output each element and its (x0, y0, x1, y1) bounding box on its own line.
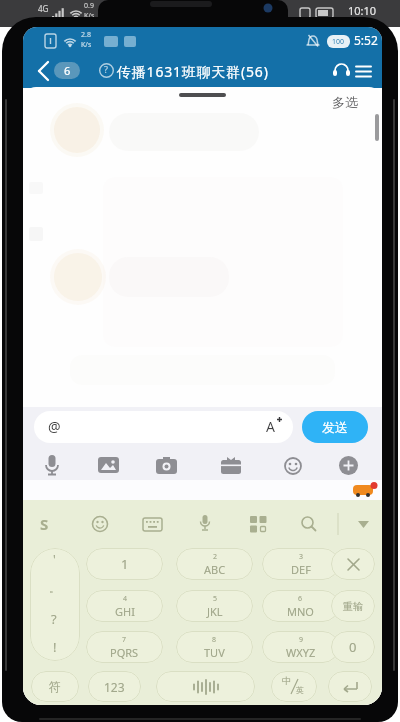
staticText: TUV (204, 645, 225, 660)
staticText: 10:10 (348, 3, 377, 18)
staticText: DEF (291, 562, 311, 577)
button[interactable] (92, 516, 108, 532)
button[interactable]: 4 (86, 590, 163, 622)
staticText: 传播1631班聊天群(56) (117, 62, 269, 81)
staticText: 1 (121, 555, 129, 573)
staticText: 100 (332, 37, 345, 47)
staticText: 中 (282, 675, 291, 686)
button[interactable] (331, 548, 375, 580)
staticText: @ (48, 417, 61, 436)
button[interactable] (156, 671, 255, 702)
staticText: 发送 (322, 419, 348, 435)
button[interactable]: 123 (88, 671, 141, 702)
staticText: 5 (213, 594, 218, 604)
staticText: 123 (104, 679, 125, 695)
button[interactable]: 重输 (331, 590, 375, 622)
button[interactable] (332, 62, 352, 79)
button[interactable] (356, 65, 372, 78)
button[interactable] (34, 411, 293, 443)
button[interactable]: 3 (262, 548, 339, 580)
button[interactable] (30, 548, 80, 661)
staticText: 0.9 (84, 1, 94, 11)
staticText: WXYZ (286, 645, 316, 660)
staticText: JKL (207, 604, 223, 619)
button[interactable]: 9 (262, 631, 339, 663)
button[interactable] (250, 516, 266, 532)
staticText: 9 (299, 635, 304, 645)
staticText: 4G (38, 3, 49, 14)
button[interactable]: 多选 (328, 91, 362, 113)
button[interactable]: 6 (262, 590, 339, 622)
staticText: 2 (213, 552, 218, 562)
staticText: 。 (49, 581, 60, 595)
staticText: 8 (212, 635, 217, 645)
staticText: 3 (299, 552, 304, 562)
button[interactable]: 发送 (302, 411, 368, 443)
button[interactable] (42, 455, 62, 476)
button[interactable]: 8 (176, 631, 253, 663)
button[interactable] (301, 516, 317, 532)
button[interactable] (98, 457, 119, 474)
staticText: 5:52 (354, 32, 378, 48)
staticText: 6 (64, 63, 71, 78)
button[interactable]: 符 (31, 671, 79, 702)
button[interactable] (358, 521, 370, 529)
staticText: ? (104, 63, 108, 75)
button[interactable] (36, 61, 56, 81)
staticText: 2.8 (81, 30, 91, 40)
button[interactable]: 0 (331, 631, 375, 663)
button[interactable]: 中 (271, 671, 317, 702)
staticText: ' (53, 551, 56, 567)
staticText: ABC (204, 562, 226, 577)
staticText: GHI (115, 604, 135, 619)
button[interactable] (284, 457, 302, 475)
button[interactable]: 2 (176, 548, 253, 580)
staticText: ! (53, 638, 57, 656)
button[interactable] (339, 456, 358, 475)
staticText: K/s (81, 40, 92, 50)
staticText: 重输 (343, 600, 363, 613)
staticText: 0 (349, 638, 357, 656)
staticText: 7 (122, 635, 127, 645)
staticText: PQRS (110, 645, 139, 660)
staticText: 6 (298, 594, 303, 604)
button[interactable] (143, 518, 162, 531)
button[interactable] (198, 515, 212, 532)
button[interactable]: 6 (54, 62, 80, 79)
staticText: S (40, 514, 49, 534)
button[interactable] (156, 457, 177, 474)
button[interactable]: 7 (86, 631, 163, 663)
staticText: K/s (84, 11, 95, 21)
staticText: 英 (296, 685, 304, 695)
staticText: ? (51, 610, 57, 628)
staticText: 4 (123, 594, 128, 604)
button[interactable] (221, 457, 241, 474)
staticText: MNO (287, 604, 314, 619)
button[interactable]: 5 (176, 590, 253, 622)
button[interactable]: 1 (86, 548, 163, 580)
staticText: A (266, 417, 275, 436)
staticText: 符 (49, 679, 61, 694)
button[interactable] (328, 671, 372, 702)
staticText: 多选 (332, 94, 358, 110)
